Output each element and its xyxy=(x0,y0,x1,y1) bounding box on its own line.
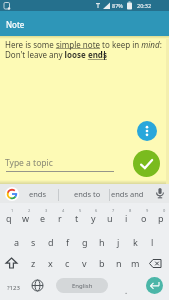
staticText: 5 xyxy=(79,208,82,213)
staticText: English xyxy=(72,282,93,290)
staticText: e xyxy=(40,212,46,224)
button[interactable]: i xyxy=(118,209,135,227)
button[interactable] xyxy=(156,188,164,199)
staticText: y xyxy=(91,212,96,224)
staticText: d xyxy=(48,236,54,248)
staticText: q xyxy=(6,212,12,224)
button[interactable]: v xyxy=(76,254,93,272)
staticText: m xyxy=(131,257,140,269)
button[interactable]: m xyxy=(127,254,144,272)
button[interactable]: n xyxy=(110,254,127,272)
staticText: p xyxy=(158,212,164,224)
staticText: 3 xyxy=(45,208,48,213)
staticText: n xyxy=(116,257,122,269)
button[interactable] xyxy=(146,277,163,294)
button[interactable]: f xyxy=(59,233,76,251)
button[interactable]: p xyxy=(152,209,169,227)
button[interactable]: q xyxy=(0,209,17,227)
button[interactable]: y xyxy=(85,209,102,227)
staticText: 1 xyxy=(11,208,14,213)
staticText: Here is some simple note to keep in mind… xyxy=(5,39,162,61)
button[interactable]: e xyxy=(34,209,51,227)
staticText: . xyxy=(125,285,128,296)
staticText: h xyxy=(99,236,105,248)
button[interactable]: z xyxy=(25,254,42,272)
staticText: Note xyxy=(6,19,25,30)
staticText: ends and xyxy=(111,189,144,199)
staticText: l xyxy=(151,236,154,248)
button[interactable]: ends xyxy=(24,184,51,203)
staticText: j xyxy=(117,236,120,248)
staticText: s xyxy=(31,236,36,248)
staticText: ?123 xyxy=(7,284,20,292)
button[interactable]: h xyxy=(93,233,110,251)
staticText: 7 xyxy=(112,208,115,213)
button[interactable] xyxy=(137,121,157,141)
staticText: Type a topic xyxy=(5,157,53,169)
staticText: 20:32 xyxy=(137,2,152,9)
staticText: ends xyxy=(29,189,47,199)
button[interactable] xyxy=(5,187,19,201)
button[interactable]: ends and xyxy=(110,184,144,203)
staticText: 87% xyxy=(112,2,123,9)
button[interactable]: u xyxy=(101,209,118,227)
button[interactable] xyxy=(144,254,166,272)
button[interactable]: r xyxy=(51,209,68,227)
button[interactable]: English xyxy=(56,278,108,293)
button[interactable]: o xyxy=(135,209,152,227)
staticText: 4 xyxy=(62,208,65,213)
button[interactable]: l xyxy=(144,233,161,251)
button[interactable]: s xyxy=(25,233,42,251)
button[interactable] xyxy=(1,254,21,272)
staticText: g xyxy=(82,236,88,248)
staticText: w xyxy=(22,212,30,224)
staticText: 9 xyxy=(146,208,149,213)
staticText: 0 xyxy=(163,208,166,213)
staticText: t xyxy=(75,212,79,224)
button[interactable]: . xyxy=(118,281,134,299)
staticText: ends to xyxy=(74,189,101,199)
button[interactable]: w xyxy=(17,209,34,227)
button[interactable]: a xyxy=(8,233,25,251)
staticText: f xyxy=(66,236,70,248)
button[interactable]: ends to xyxy=(66,184,109,203)
staticText: 2 xyxy=(28,208,31,213)
button[interactable]: j xyxy=(110,233,127,251)
staticText: o xyxy=(141,212,147,224)
button[interactable]: Note xyxy=(0,11,169,36)
staticText: a xyxy=(14,236,20,248)
button[interactable]: d xyxy=(42,233,59,251)
button[interactable] xyxy=(28,276,46,294)
staticText: 6 xyxy=(95,208,98,213)
button[interactable]: t xyxy=(68,209,85,227)
button[interactable]: k xyxy=(127,233,144,251)
staticText: k xyxy=(133,236,138,248)
button[interactable]: b xyxy=(93,254,110,272)
staticText: c xyxy=(65,257,70,269)
staticText: z xyxy=(31,257,36,269)
staticText: b xyxy=(99,257,105,269)
button[interactable]: ?123 xyxy=(2,279,24,297)
staticText: x xyxy=(48,257,53,269)
button[interactable]: c xyxy=(59,254,76,272)
button[interactable] xyxy=(133,150,160,177)
staticText: u xyxy=(107,212,113,224)
staticText: i xyxy=(125,212,128,224)
button[interactable]: x xyxy=(42,254,59,272)
staticText: v xyxy=(82,257,87,269)
button[interactable]: g xyxy=(76,233,93,251)
staticText: r xyxy=(58,212,62,224)
staticText: 8 xyxy=(129,208,132,213)
